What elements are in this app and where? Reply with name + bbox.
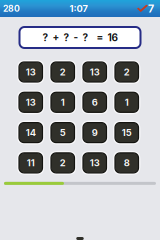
- button[interactable]: Next: [76, 237, 84, 240]
- button[interactable]: 15: [113, 121, 140, 145]
- staticText: 14: [26, 127, 36, 138]
- button[interactable]: 2: [49, 151, 76, 175]
- staticText: 2: [60, 66, 66, 78]
- button[interactable]: 13: [17, 60, 44, 84]
- staticText: 9: [92, 127, 98, 138]
- staticText: 8: [124, 157, 130, 169]
- button[interactable]: 9: [81, 121, 108, 145]
- button[interactable]: 1: [113, 90, 140, 114]
- staticText: 2: [60, 157, 66, 169]
- button[interactable]: 13: [81, 151, 108, 175]
- button[interactable]: 1: [49, 90, 76, 114]
- button[interactable]: 13: [17, 90, 44, 114]
- button[interactable]: 11: [17, 151, 44, 175]
- staticText: 15: [122, 127, 132, 138]
- staticText: 11: [27, 157, 35, 169]
- staticText: 1:07: [69, 3, 87, 14]
- staticText: 5: [60, 127, 66, 138]
- button[interactable]: 6: [81, 90, 108, 114]
- staticText: 6: [92, 97, 98, 108]
- staticText: 7: [148, 2, 154, 15]
- staticText: 13: [26, 66, 36, 78]
- staticText: 13: [90, 157, 100, 169]
- button[interactable]: 2: [113, 60, 140, 84]
- button[interactable]: 2: [49, 60, 76, 84]
- staticText: 1: [125, 97, 129, 108]
- staticText: 1: [61, 97, 65, 108]
- staticText: 280: [3, 3, 20, 14]
- button[interactable]: 8: [113, 151, 140, 175]
- staticText: ? + ? - ? = 16: [42, 31, 117, 44]
- button[interactable]: 280: [3, 3, 20, 14]
- button[interactable]: 5: [49, 121, 76, 145]
- button[interactable]: 14: [17, 121, 44, 145]
- staticText: 13: [26, 97, 36, 108]
- staticText: 2: [124, 66, 130, 78]
- button[interactable]: 13: [81, 60, 108, 84]
- staticText: 13: [90, 66, 100, 78]
